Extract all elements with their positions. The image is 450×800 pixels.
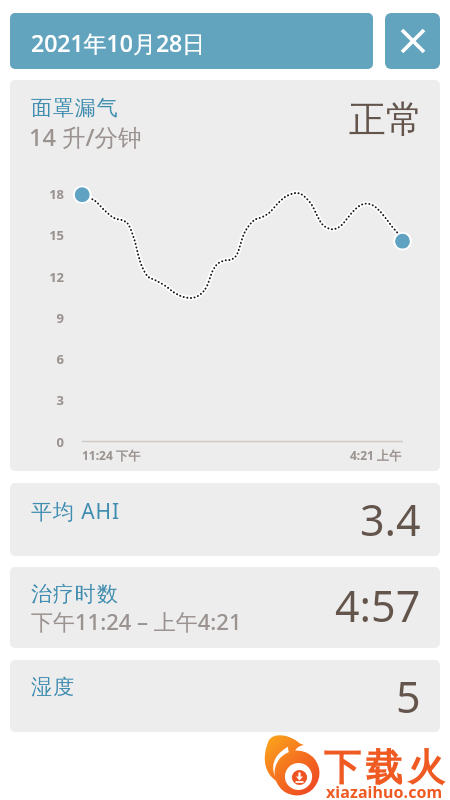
staticText: 4:57 bbox=[335, 576, 421, 635]
staticText: xiazaihuo.com bbox=[326, 781, 443, 800]
staticText: 12 bbox=[10, 268, 64, 286]
staticText: 6 bbox=[10, 350, 64, 368]
staticText: 11:24 下午 bbox=[82, 447, 140, 463]
staticText: 9 bbox=[10, 309, 64, 327]
staticText: 湿度 bbox=[31, 674, 75, 700]
staticText: 正常 bbox=[349, 96, 423, 143]
staticText: 3 bbox=[10, 391, 64, 409]
button[interactable]: Close bbox=[385, 13, 440, 69]
staticText: 平均 AHI bbox=[31, 497, 120, 526]
staticText: 14 升/分钟 bbox=[29, 121, 142, 153]
staticText: 2021年10月28日 bbox=[31, 27, 206, 58]
staticText: 15 bbox=[10, 226, 64, 244]
button[interactable]: 湿度 bbox=[10, 660, 440, 732]
staticText: 下午11:24 – 上午4:21 bbox=[31, 606, 242, 636]
button[interactable]: 2021年10月28日 bbox=[10, 13, 373, 69]
staticText: 18 bbox=[10, 185, 64, 203]
staticText: 4:21 上午 bbox=[350, 447, 402, 463]
button[interactable]: 治疗时数 bbox=[10, 567, 440, 648]
button[interactable]: 面罩漏气 bbox=[10, 80, 440, 471]
staticText: 5 bbox=[396, 667, 421, 726]
staticText: 下载火 bbox=[321, 744, 447, 791]
staticText: 面罩漏气 bbox=[31, 95, 119, 121]
staticText: 0 bbox=[10, 433, 64, 451]
button[interactable]: 平均 AHI bbox=[10, 483, 440, 556]
staticText: 3.4 bbox=[360, 490, 421, 549]
staticText: 治疗时数 bbox=[31, 581, 119, 607]
